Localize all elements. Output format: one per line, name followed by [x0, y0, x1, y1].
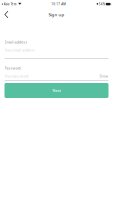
staticText: Sign up [48, 12, 64, 17]
staticText: Asia Tera [4, 2, 17, 6]
staticText: Password [4, 66, 20, 70]
button[interactable]: Show [99, 74, 108, 78]
staticText: Email address [4, 40, 27, 44]
button[interactable]: Next [4, 83, 108, 98]
staticText: Next [52, 88, 60, 93]
staticText: 54% [99, 2, 105, 6]
staticText: 10:17 AM [51, 2, 66, 6]
staticText: Your email address [4, 48, 35, 52]
staticText: Your password [4, 74, 28, 78]
staticText: Show [99, 74, 108, 78]
button[interactable]: Back [3, 8, 13, 20]
